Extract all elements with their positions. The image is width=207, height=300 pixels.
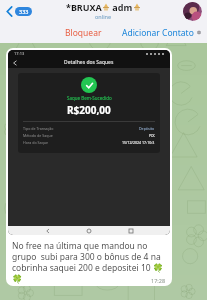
staticText: 17:13 [14, 51, 25, 56]
staticText: online [95, 13, 112, 20]
staticText: 15/12/2024 17:10:3 [122, 140, 155, 145]
button[interactable]: Bloquear [62, 24, 105, 42]
staticText: No free na última que mandou no grupo su… [12, 240, 166, 284]
button[interactable]: 17:13 [6, 48, 172, 286]
staticText: Hora do Saque [23, 140, 48, 145]
staticText: Adicionar Contato [122, 27, 194, 39]
staticText: Método de Saque [23, 133, 53, 138]
staticText: Detalhes dos Saques [64, 59, 114, 66]
staticText: Tipo de Transação [23, 126, 54, 131]
button[interactable]: Close [197, 26, 201, 39]
staticText: adm [110, 1, 133, 13]
staticText: R$200,00 [67, 103, 111, 117]
button[interactable]: Profile photo [183, 2, 202, 21]
staticText: Depósito [139, 126, 155, 131]
staticText: *BRUXA [66, 1, 102, 13]
button[interactable]: Back [4, 4, 34, 19]
staticText: Saque Bem-Sucedido [67, 95, 112, 101]
button[interactable]: Adicionar Contato [119, 24, 197, 42]
staticText: PIX [149, 133, 155, 138]
staticText: 17:28 [151, 277, 166, 284]
staticText: 333 [19, 8, 29, 15]
staticText: Bloquear [65, 27, 102, 39]
